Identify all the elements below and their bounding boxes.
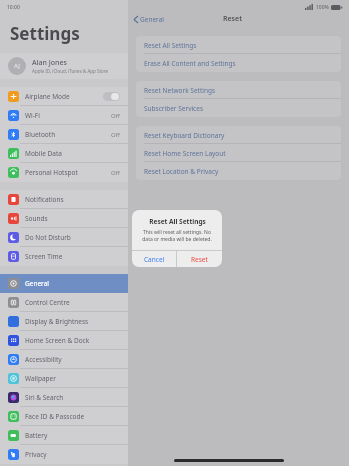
staticText: Off xyxy=(111,112,120,120)
staticText: Notifications xyxy=(25,195,64,204)
staticText: Mobile Data xyxy=(25,149,62,158)
staticText: Display & Brightness xyxy=(25,317,89,326)
button[interactable]: Screen Time xyxy=(0,247,128,266)
staticText: General xyxy=(25,279,49,288)
staticText: Privacy xyxy=(25,450,47,459)
staticText: Bluetooth xyxy=(25,130,56,139)
button[interactable]: Bluetooth xyxy=(0,125,128,144)
staticText: Off xyxy=(111,169,120,177)
staticText: Airplane Mode xyxy=(25,92,70,101)
button[interactable]: Do Not Disturb xyxy=(0,228,128,247)
staticText: General xyxy=(140,15,164,24)
staticText: Siri & Search xyxy=(25,393,64,402)
staticText: Apple ID, iCloud, iTunes & App Store xyxy=(32,68,109,74)
button[interactable]: Cancel xyxy=(132,251,176,267)
button[interactable]: General xyxy=(132,13,166,26)
button[interactable]: Personal Hotspot xyxy=(0,163,128,182)
button[interactable]: Reset Location & Privacy xyxy=(136,162,341,180)
button[interactable]: Notifications xyxy=(0,190,128,209)
staticText: Reset All Settings xyxy=(144,41,197,50)
button[interactable]: Home Screen & Dock xyxy=(0,331,128,350)
staticText: 10:00 xyxy=(7,4,20,11)
staticText: Erase All Content and Settings xyxy=(144,59,236,68)
staticText: Screen Time xyxy=(25,252,63,261)
button[interactable]: Privacy xyxy=(0,445,128,464)
staticText: Home Screen & Dock xyxy=(25,336,90,345)
staticText: Alan Jones xyxy=(32,58,67,68)
button[interactable]: AJ xyxy=(0,53,128,79)
staticText: Do Not Disturb xyxy=(25,233,71,242)
staticText: Control Centre xyxy=(25,298,70,307)
staticText: Personal Hotspot xyxy=(25,168,78,177)
staticText: Reset Home Screen Layout xyxy=(144,149,226,158)
staticText: Accessibility xyxy=(25,355,62,364)
button[interactable]: Erase All Content and Settings xyxy=(136,54,341,72)
button[interactable]: Reset Home Screen Layout xyxy=(136,144,341,162)
button[interactable]: Airplane Mode xyxy=(0,87,128,106)
staticText: Settings xyxy=(10,22,80,45)
staticText: Cancel xyxy=(144,255,165,264)
staticText: Wi-Fi xyxy=(25,111,40,120)
staticText: Reset xyxy=(223,14,242,24)
button[interactable]: Display & Brightness xyxy=(0,312,128,331)
staticText: Reset All Settings xyxy=(149,217,206,226)
staticText: AJ xyxy=(14,62,20,70)
staticText: Subscriber Services xyxy=(144,104,204,113)
button[interactable]: Reset Keyboard Dictionary xyxy=(136,126,341,144)
button[interactable]: General xyxy=(0,274,128,293)
staticText: 100% xyxy=(316,4,329,11)
button[interactable]: Subscriber Services xyxy=(136,99,341,117)
button[interactable]: Siri & Search xyxy=(0,388,128,407)
staticText: Reset Keyboard Dictionary xyxy=(144,131,225,140)
staticText: This will reset all settings. No data or… xyxy=(139,229,215,243)
staticText: Off xyxy=(111,131,120,139)
button[interactable]: Wallpaper xyxy=(0,369,128,388)
staticText: Battery xyxy=(25,431,48,440)
button[interactable]: Mobile Data xyxy=(0,144,128,163)
button[interactable]: Reset xyxy=(177,251,222,267)
staticText: Wallpaper xyxy=(25,374,56,383)
button[interactable]: Reset All Settings xyxy=(136,36,341,54)
staticText: Face ID & Passcode xyxy=(25,412,85,421)
button[interactable]: Control Centre xyxy=(0,293,128,312)
staticText: Reset Network Settings xyxy=(144,86,216,95)
staticText: Reset xyxy=(191,255,208,264)
button[interactable]: Face ID & Passcode xyxy=(0,407,128,426)
button[interactable]: Battery xyxy=(0,426,128,445)
staticText: Reset Location & Privacy xyxy=(144,167,219,176)
button[interactable]: Accessibility xyxy=(0,350,128,369)
staticText: Sounds xyxy=(25,214,48,223)
button[interactable]: Wi-Fi xyxy=(0,106,128,125)
button[interactable]: Reset Network Settings xyxy=(136,81,341,99)
button[interactable]: Sounds xyxy=(0,209,128,228)
